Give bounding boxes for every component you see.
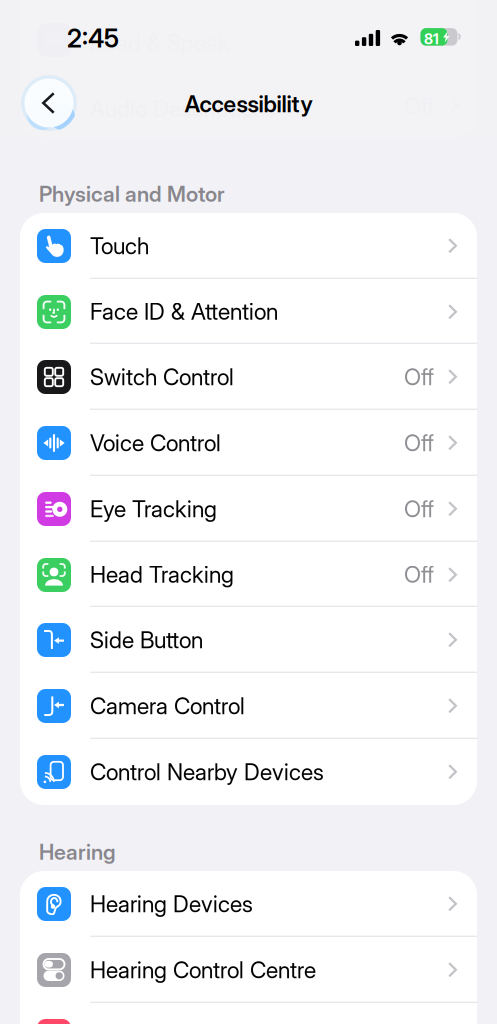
button[interactable]: Voice Control <box>20 410 477 476</box>
staticText: Touch <box>90 232 149 260</box>
staticText: Hearing Control Centre <box>90 956 316 984</box>
staticText: Control Nearby Devices <box>90 758 324 786</box>
staticText: Accessibility <box>184 90 312 118</box>
button[interactable]: Camera Control <box>20 673 477 739</box>
button[interactable]: Switch Control <box>20 344 477 410</box>
staticText: Physical and Motor <box>39 181 225 207</box>
staticText: Eye Tracking <box>90 495 217 523</box>
staticText: Voice Control <box>90 429 221 457</box>
button[interactable]: Back <box>20 74 78 132</box>
staticText: Switch Control <box>90 363 234 391</box>
staticText: Off <box>404 363 434 391</box>
staticText: Camera Control <box>90 692 245 720</box>
staticText: 2:45 <box>67 23 119 54</box>
staticText: Hearing Devices <box>90 890 253 918</box>
staticText: Off <box>404 561 434 588</box>
staticText: Audio Descriptions <box>90 95 276 122</box>
staticText: Off <box>404 429 434 457</box>
staticText: Face ID & Attention <box>90 298 278 325</box>
button[interactable]: Face ID & Attention <box>20 279 477 344</box>
staticText: Side Button <box>90 626 203 654</box>
staticText: Off <box>404 495 434 523</box>
button[interactable]: Music Haptics <box>20 1003 477 1024</box>
button[interactable]: Hearing Control Centre <box>20 937 477 1003</box>
button[interactable]: Hearing Devices <box>20 871 477 937</box>
staticText: Head Tracking <box>90 561 234 588</box>
button[interactable]: Head Tracking <box>20 542 477 607</box>
staticText: Read & Speak <box>90 29 230 56</box>
button[interactable]: Side Button <box>20 607 477 673</box>
button[interactable]: Control Nearby Devices <box>20 739 477 805</box>
button[interactable]: Touch <box>20 213 477 279</box>
staticText: Hearing <box>39 839 116 865</box>
staticText: 81 <box>424 30 439 48</box>
button[interactable]: Eye Tracking <box>20 476 477 542</box>
